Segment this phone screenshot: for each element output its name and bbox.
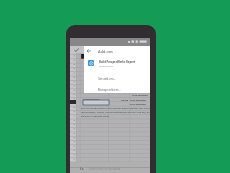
staticText: True Meeting xyxy=(130,98,146,101)
staticText: ated on a separate sheet xyxy=(81,115,110,118)
staticText: True Meeting xyxy=(130,102,146,105)
staticText: Build ProsperWorks Report xyxy=(99,60,136,64)
button[interactable]: Back xyxy=(84,46,150,56)
staticText: Get add-ons... xyxy=(98,77,116,81)
button[interactable]: Build ProsperWorks Report xyxy=(84,56,150,70)
staticText: ing formulas, charts, and formatting wil… xyxy=(81,111,150,114)
other: Back xyxy=(86,48,92,54)
staticText: Manage add-ons... xyxy=(98,88,121,92)
button[interactable]: Get add-ons... xyxy=(84,73,150,84)
button[interactable]: fx xyxy=(70,162,150,173)
staticText: fx xyxy=(80,166,84,171)
staticText: True Meeting xyxy=(132,93,148,96)
staticText: ProsperWorks xyxy=(83,97,100,100)
staticText: Add-ons xyxy=(98,49,113,54)
staticText: ProsperWorks xyxy=(99,65,114,68)
button[interactable]: Manage add-ons... xyxy=(84,84,150,95)
staticText: COME xyxy=(121,98,128,101)
staticText: get the ProsperWorks CRM Custom Report B… xyxy=(81,107,150,110)
staticText: Enter text or formula xyxy=(89,167,121,171)
other: Accept xyxy=(74,48,80,52)
